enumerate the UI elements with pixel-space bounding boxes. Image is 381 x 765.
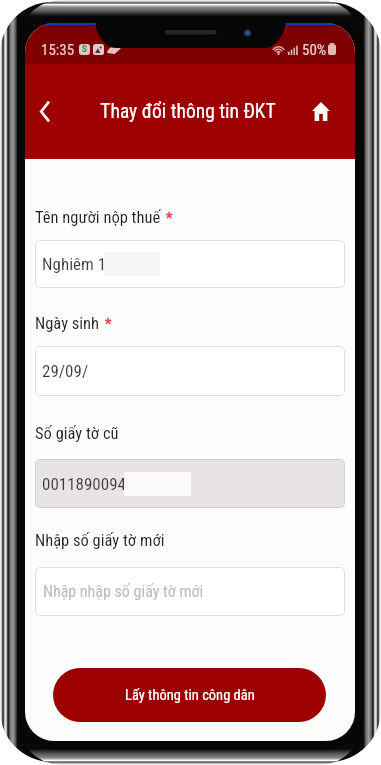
staticText: 15:35 [41,41,75,57]
button[interactable]: Back [26,92,64,130]
staticText: * [166,209,173,227]
staticText: Nhập nhập số giấy tờ mới [43,582,204,601]
staticText: Ngày sinh [35,314,100,333]
button[interactable]: Home [304,94,338,128]
staticText: S [82,44,87,55]
button[interactable]: Lấy thông tin công dân [53,668,326,722]
button[interactable]: 29/09/ [35,346,345,396]
staticText: Nhập số giấy tờ mới [35,531,165,550]
button[interactable]: 0011890094 [35,459,345,508]
staticText: Nghiêm 1 [42,254,107,274]
staticText: 0011890094 [42,474,126,494]
staticText: Thay đổi thông tin ĐKT [100,100,276,123]
button[interactable]: Nhập nhập số giấy tờ mới [35,567,345,616]
button[interactable]: Nghiêm 1 [35,240,345,288]
staticText: * [105,315,112,333]
staticText: Tên người nộp thuế [35,208,161,227]
staticText: 50% [302,41,327,57]
staticText: Số giấy tờ cũ [35,424,119,443]
staticText: 29/09/ [42,361,89,381]
staticText: Lấy thông tin công dân [125,687,255,704]
